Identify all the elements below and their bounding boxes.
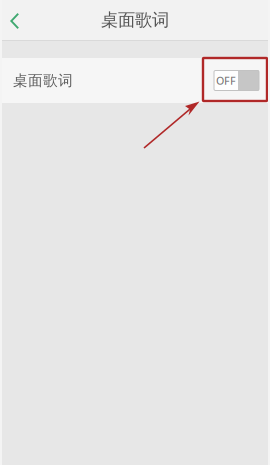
button[interactable]: Back	[0, 0, 29, 40]
button[interactable]: 桌面歌词 switch, off	[214, 70, 270, 90]
staticText: OFF	[216, 73, 236, 88]
staticText: 桌面歌词	[13, 71, 73, 89]
staticText: 桌面歌词	[101, 9, 169, 31]
